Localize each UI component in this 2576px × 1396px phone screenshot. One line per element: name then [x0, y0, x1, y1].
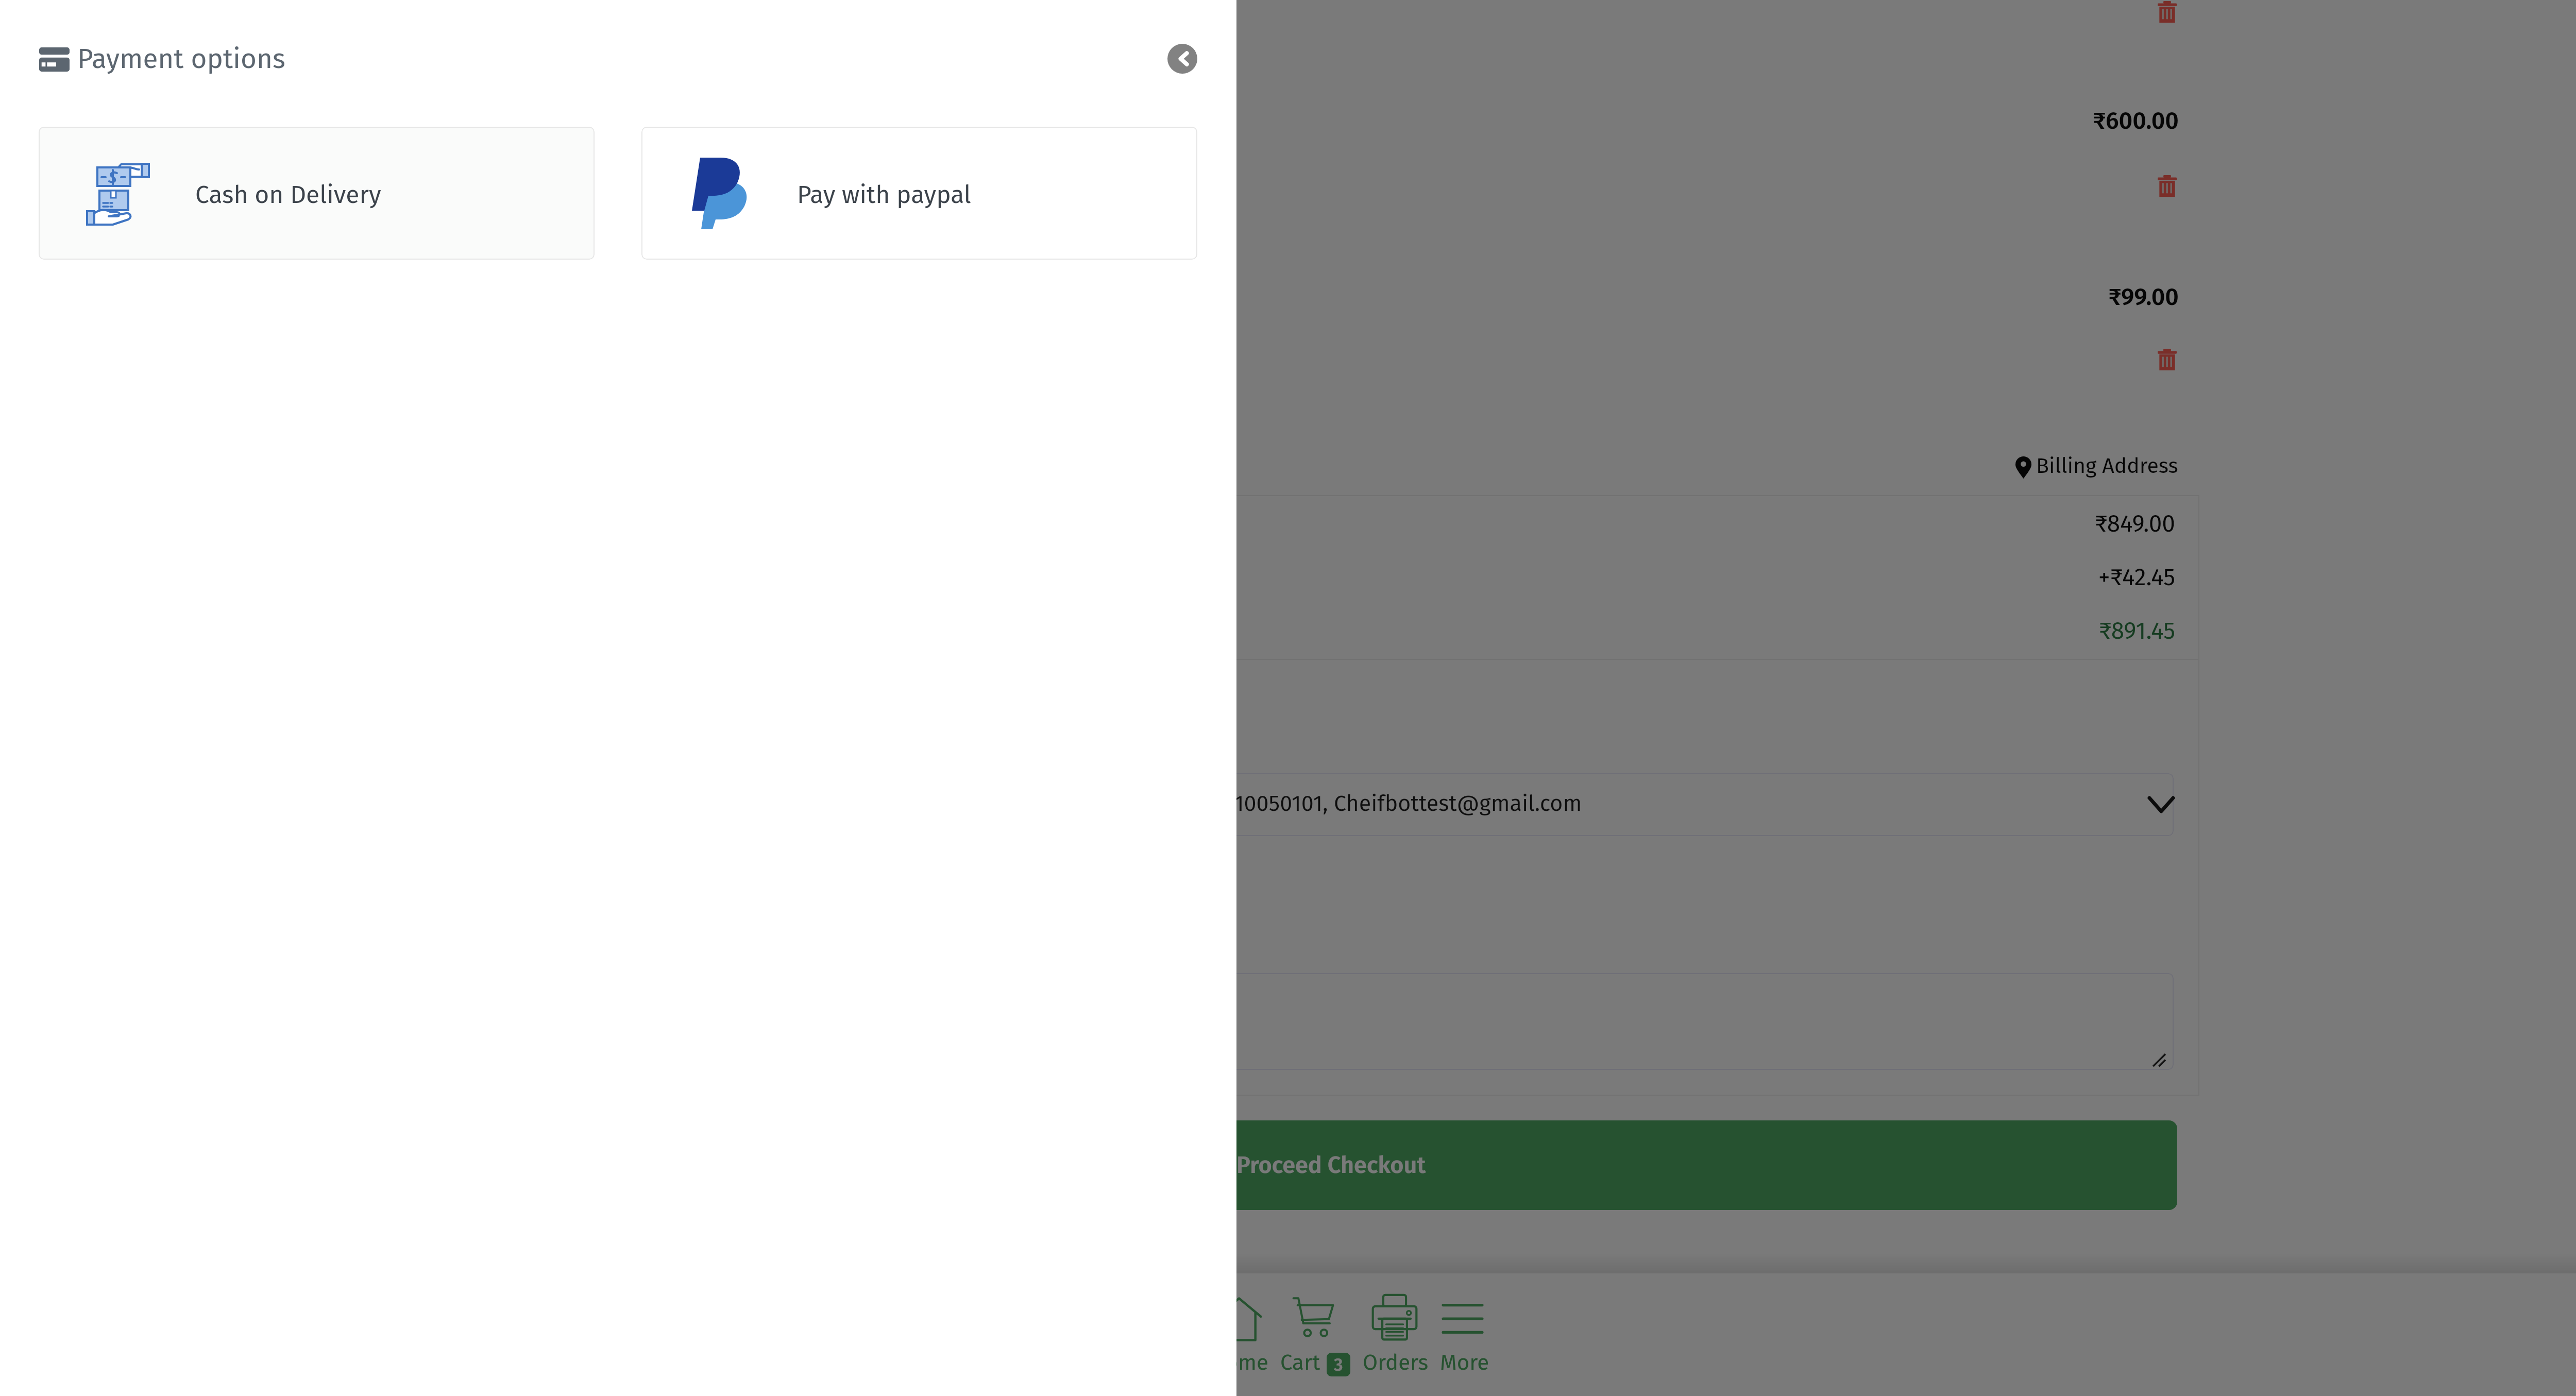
- staticText: Cash on Delivery: [195, 180, 381, 210]
- button[interactable]: Back: [1167, 44, 1197, 74]
- button[interactable]: Pay with paypal: [641, 127, 1197, 260]
- button[interactable]: Remove item: [2153, 0, 2182, 28]
- staticText: Pay with paypal: [797, 180, 971, 210]
- staticText: ₹99.00: [1818, 283, 2179, 311]
- staticText: Proceed Checkout: [1236, 1151, 1426, 1179]
- staticText: +₹42.45: [1815, 563, 2175, 591]
- button[interactable]: Home: [1206, 1273, 1268, 1396]
- staticText: ₹600.00: [1818, 107, 2179, 135]
- staticText: ₹849.00: [1815, 509, 2175, 538]
- staticText: Billing Address: [2036, 453, 2178, 479]
- staticText: Orders: [1363, 1350, 1429, 1375]
- button[interactable]: Remove item: [2153, 170, 2182, 202]
- staticText: 10050101, Cheifbottest@gmail.com: [1234, 790, 1582, 817]
- button[interactable]: Select billing address: [1108, 773, 2174, 836]
- button[interactable]: [1072, 1120, 2177, 1210]
- button[interactable]: Remove item: [2153, 344, 2182, 376]
- button[interactable]: More: [1435, 1273, 1493, 1396]
- staticText: Cart: [1280, 1350, 1320, 1375]
- staticText: More: [1440, 1350, 1489, 1375]
- button[interactable]: Cash on Delivery: [39, 127, 595, 260]
- staticText: Home: [1211, 1350, 1268, 1375]
- staticText: ₹891.45: [1815, 617, 2175, 645]
- button[interactable]: Orders: [1359, 1273, 1432, 1396]
- staticText: Payment options: [77, 42, 285, 75]
- staticText: 3: [1334, 1354, 1343, 1375]
- button[interactable]: Cart: [1275, 1273, 1356, 1396]
